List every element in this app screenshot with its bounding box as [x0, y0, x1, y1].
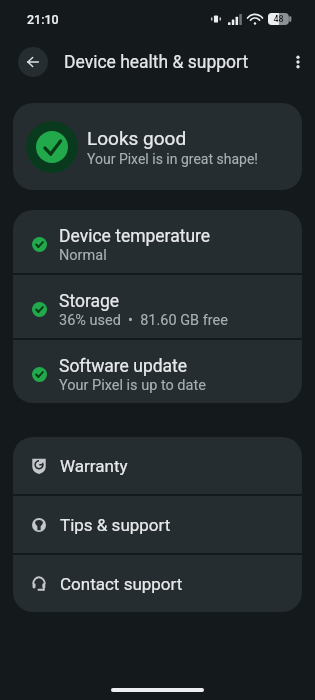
staticText: Looks good	[87, 127, 187, 149]
staticText: 36% used • 81.60 GB free	[59, 312, 228, 329]
button[interactable]: Device temperature	[13, 210, 302, 273]
staticText: Device temperature	[59, 226, 211, 247]
staticText: Software update	[59, 356, 188, 377]
staticText: Your Pixel is up to date	[59, 377, 206, 394]
staticText: Warranty	[60, 456, 128, 476]
button[interactable]: Contact support	[13, 555, 302, 612]
button[interactable]: More options	[283, 47, 313, 77]
button[interactable]: Looks good	[13, 103, 302, 190]
staticText: 48	[273, 14, 284, 25]
staticText: Contact support	[60, 574, 183, 594]
staticText: Storage	[59, 291, 120, 312]
staticText: Device health & support	[64, 52, 249, 73]
staticText: Normal	[59, 247, 107, 264]
staticText: 21:10	[27, 12, 59, 27]
button[interactable]: Tips & support	[13, 496, 302, 553]
button[interactable]: Back	[18, 47, 48, 77]
staticText: Your Pixel is in great shape!	[87, 151, 258, 167]
staticText: Tips & support	[60, 515, 171, 535]
button[interactable]: Software update	[13, 340, 302, 403]
button[interactable]: Storage	[13, 275, 302, 338]
button[interactable]: Warranty	[13, 437, 302, 494]
